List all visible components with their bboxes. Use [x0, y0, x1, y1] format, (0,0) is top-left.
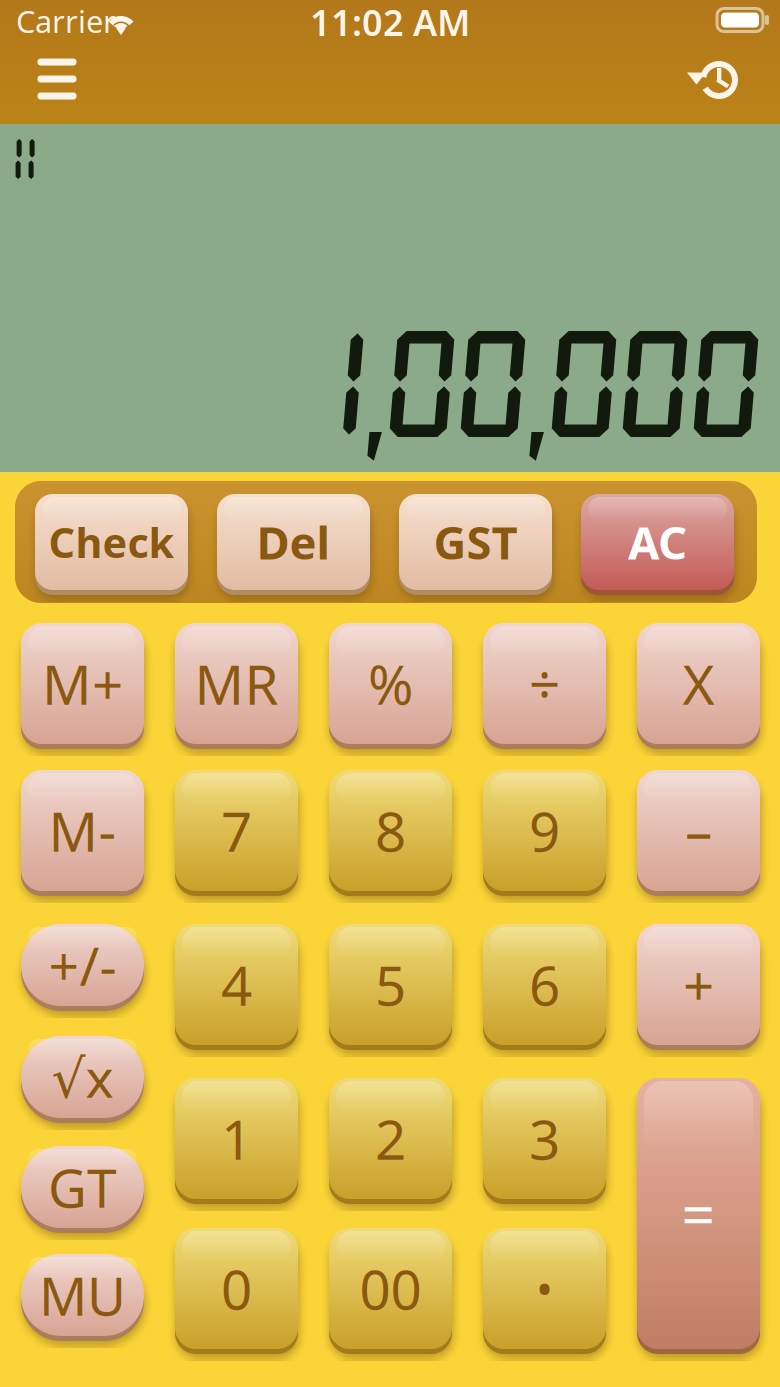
staticText: 9	[529, 794, 560, 867]
button[interactable]: 2	[329, 1078, 452, 1199]
staticText: M+	[42, 647, 123, 720]
button[interactable]: GT	[21, 1146, 144, 1228]
button[interactable]: 8	[329, 770, 452, 891]
button[interactable]: +/-	[21, 924, 144, 1006]
staticText: 7	[221, 794, 252, 867]
staticText: 8	[375, 794, 406, 867]
staticText: 4	[221, 948, 252, 1021]
button[interactable]: X	[637, 623, 760, 744]
button[interactable]: +	[637, 924, 760, 1045]
button[interactable]: 1	[175, 1078, 298, 1199]
staticText: +/-	[48, 930, 116, 1000]
button[interactable]: 6	[483, 924, 606, 1045]
button[interactable]: 0	[175, 1228, 298, 1349]
button[interactable]: MR	[175, 623, 298, 744]
button[interactable]: AC	[581, 494, 734, 590]
staticText: Check	[48, 515, 174, 569]
staticText: M-	[48, 794, 116, 867]
staticText: X	[682, 647, 714, 720]
staticText: GT	[48, 1152, 117, 1222]
button[interactable]: =	[637, 1078, 760, 1349]
button[interactable]: %	[329, 623, 452, 744]
staticText: 3	[529, 1102, 560, 1175]
staticText: %	[368, 647, 413, 720]
staticText: MR	[194, 647, 278, 720]
staticText: MU	[39, 1260, 126, 1330]
staticText: Del	[256, 512, 330, 572]
button[interactable]: 9	[483, 770, 606, 891]
staticText: 00	[359, 1252, 421, 1325]
staticText: 11:02 AM	[310, 0, 470, 46]
button[interactable]: √x	[21, 1036, 144, 1118]
button[interactable]: 7	[175, 770, 298, 891]
button[interactable]: –	[637, 770, 760, 891]
button[interactable]: M-	[21, 770, 144, 891]
staticText: •	[536, 1258, 553, 1319]
button[interactable]: 4	[175, 924, 298, 1045]
button[interactable]: •	[483, 1228, 606, 1349]
button[interactable]: History	[682, 48, 744, 110]
staticText: ÷	[529, 647, 560, 720]
button[interactable]: 00	[329, 1228, 452, 1349]
staticText: 5	[375, 948, 406, 1021]
staticText: AC	[628, 512, 687, 572]
staticText: +	[683, 948, 714, 1021]
staticText: 1	[221, 1102, 252, 1175]
staticText: GST	[433, 512, 517, 572]
button[interactable]: M+	[21, 623, 144, 744]
button[interactable]: MU	[21, 1254, 144, 1336]
button[interactable]: Menu	[18, 45, 96, 113]
staticText: 0	[221, 1252, 252, 1325]
button[interactable]: ÷	[483, 623, 606, 744]
button[interactable]: Check	[35, 494, 188, 590]
staticText: Carrier	[16, 1, 116, 41]
staticText: –	[685, 794, 712, 867]
button[interactable]: GST	[399, 494, 552, 590]
button[interactable]: Del	[217, 494, 370, 590]
staticText: √x	[51, 1042, 113, 1112]
staticText: 2	[375, 1102, 406, 1175]
staticText: 6	[529, 948, 560, 1021]
staticText: =	[681, 1174, 715, 1252]
button[interactable]: 5	[329, 924, 452, 1045]
button[interactable]: 3	[483, 1078, 606, 1199]
